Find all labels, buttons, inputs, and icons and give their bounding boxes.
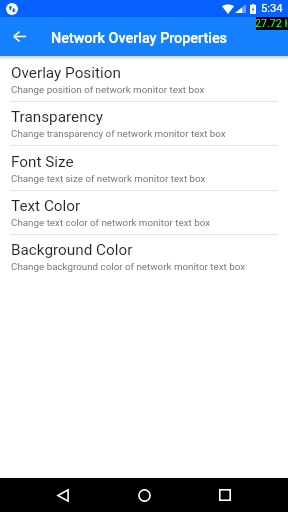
staticText: Overlay Position [11,64,121,82]
button[interactable]: Background Color [0,235,288,279]
button[interactable]: Navigate up [0,17,39,56]
staticText: Font Size [11,153,74,171]
staticText: Change transparency of network monitor t… [11,128,226,139]
button[interactable]: Font Size [0,147,288,191]
staticText: Transparency [11,108,103,126]
button[interactable]: Text Color [0,191,288,235]
staticText: Background Color [11,241,133,259]
staticText: Change text color of network monitor tex… [11,217,211,228]
button[interactable]: Transparency [0,102,288,146]
button[interactable]: Recent apps [210,480,240,510]
button[interactable]: Overlay Position [0,58,288,102]
staticText: 5:34 [261,2,283,15]
staticText: 27.72 K [256,17,287,30]
staticText: Network Overlay Properties [51,30,227,47]
button[interactable]: Home [129,480,159,510]
staticText: Change text size of network monitor text… [11,173,206,184]
staticText: Text Color [11,197,81,215]
staticText: Change position of network monitor text … [11,84,205,95]
button[interactable]: Back [48,480,78,510]
staticText: Change background color of network monit… [11,261,246,272]
